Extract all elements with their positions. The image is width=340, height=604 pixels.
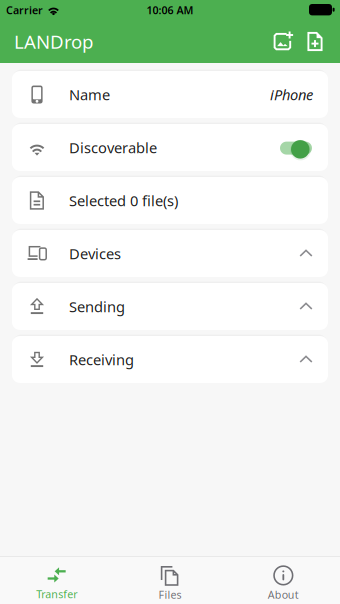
staticText: Receiving <box>69 350 134 369</box>
staticText: Transfer <box>36 587 77 601</box>
staticText: Sending <box>69 297 125 316</box>
button[interactable]: Selected 0 file(s) <box>12 177 328 224</box>
staticText: 10:06 AM <box>146 3 193 17</box>
staticText: Discoverable <box>69 138 157 157</box>
staticText: Name <box>69 85 110 104</box>
button[interactable]: Add photos <box>267 24 299 58</box>
staticText: Selected 0 file(s) <box>69 191 178 210</box>
staticText: LANDrop <box>14 29 93 54</box>
button[interactable]: Sending <box>12 283 328 330</box>
staticText: Carrier <box>6 3 43 17</box>
button[interactable]: Receiving <box>12 336 328 383</box>
staticText: Devices <box>69 244 121 263</box>
button[interactable]: Transfer <box>0 566 113 601</box>
staticText: About <box>268 587 299 602</box>
staticText: iPhone <box>270 85 313 104</box>
button[interactable]: Discoverable <box>12 124 328 171</box>
button[interactable]: Add files <box>299 24 331 58</box>
button[interactable]: About <box>227 565 340 602</box>
button[interactable]: Devices <box>12 230 328 277</box>
staticText: Files <box>158 587 181 602</box>
button[interactable]: Files <box>113 565 227 602</box>
button[interactable]: Name <box>12 71 328 118</box>
